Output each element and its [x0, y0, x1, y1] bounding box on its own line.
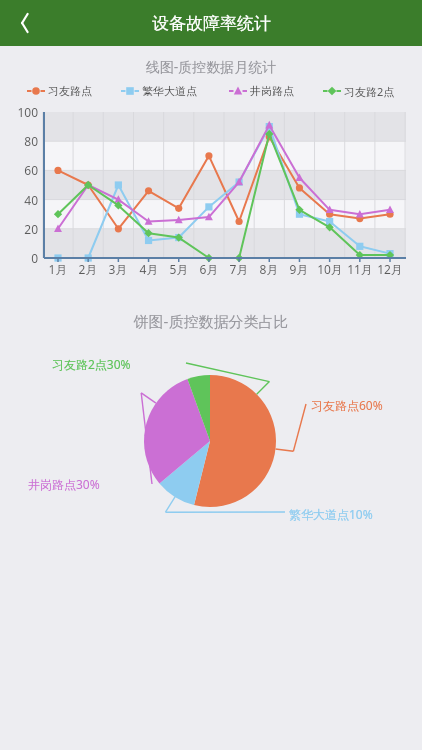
staticText: 100	[0, 104, 38, 120]
staticText: 5月	[161, 261, 197, 277]
staticText: 6月	[191, 261, 227, 277]
button[interactable]: Back	[0, 0, 46, 46]
staticText: 0	[0, 250, 38, 266]
staticText: 8月	[251, 261, 287, 277]
staticText: 10月	[312, 261, 348, 277]
staticText: 习友路点60%	[311, 397, 383, 413]
staticText: 40	[0, 192, 38, 208]
staticText: 80	[0, 133, 38, 149]
staticText: 12月	[372, 261, 408, 277]
staticText: 线图-质控数据月统计	[0, 57, 422, 76]
staticText: 20	[0, 221, 38, 237]
staticText: 60	[0, 162, 38, 178]
staticText: 井岗路点	[250, 84, 294, 98]
staticText: 11月	[342, 261, 378, 277]
staticText: 9月	[281, 261, 317, 277]
staticText: 1月	[40, 261, 76, 277]
staticText: 7月	[221, 261, 257, 277]
staticText: 井岗路点30%	[28, 476, 100, 492]
staticText: 2月	[70, 261, 106, 277]
staticText: 3月	[100, 261, 136, 277]
staticText: 饼图-质控数据分类占比	[0, 311, 422, 331]
staticText: 繁华大道点	[142, 84, 197, 98]
staticText: 设备故障率统计	[152, 13, 271, 34]
staticText: 4月	[131, 261, 167, 277]
staticText: 繁华大道点10%	[289, 506, 373, 522]
staticText: 习友路2点30%	[52, 356, 131, 372]
staticText: 习友路2点	[344, 84, 395, 99]
staticText: 习友路点	[48, 84, 92, 98]
